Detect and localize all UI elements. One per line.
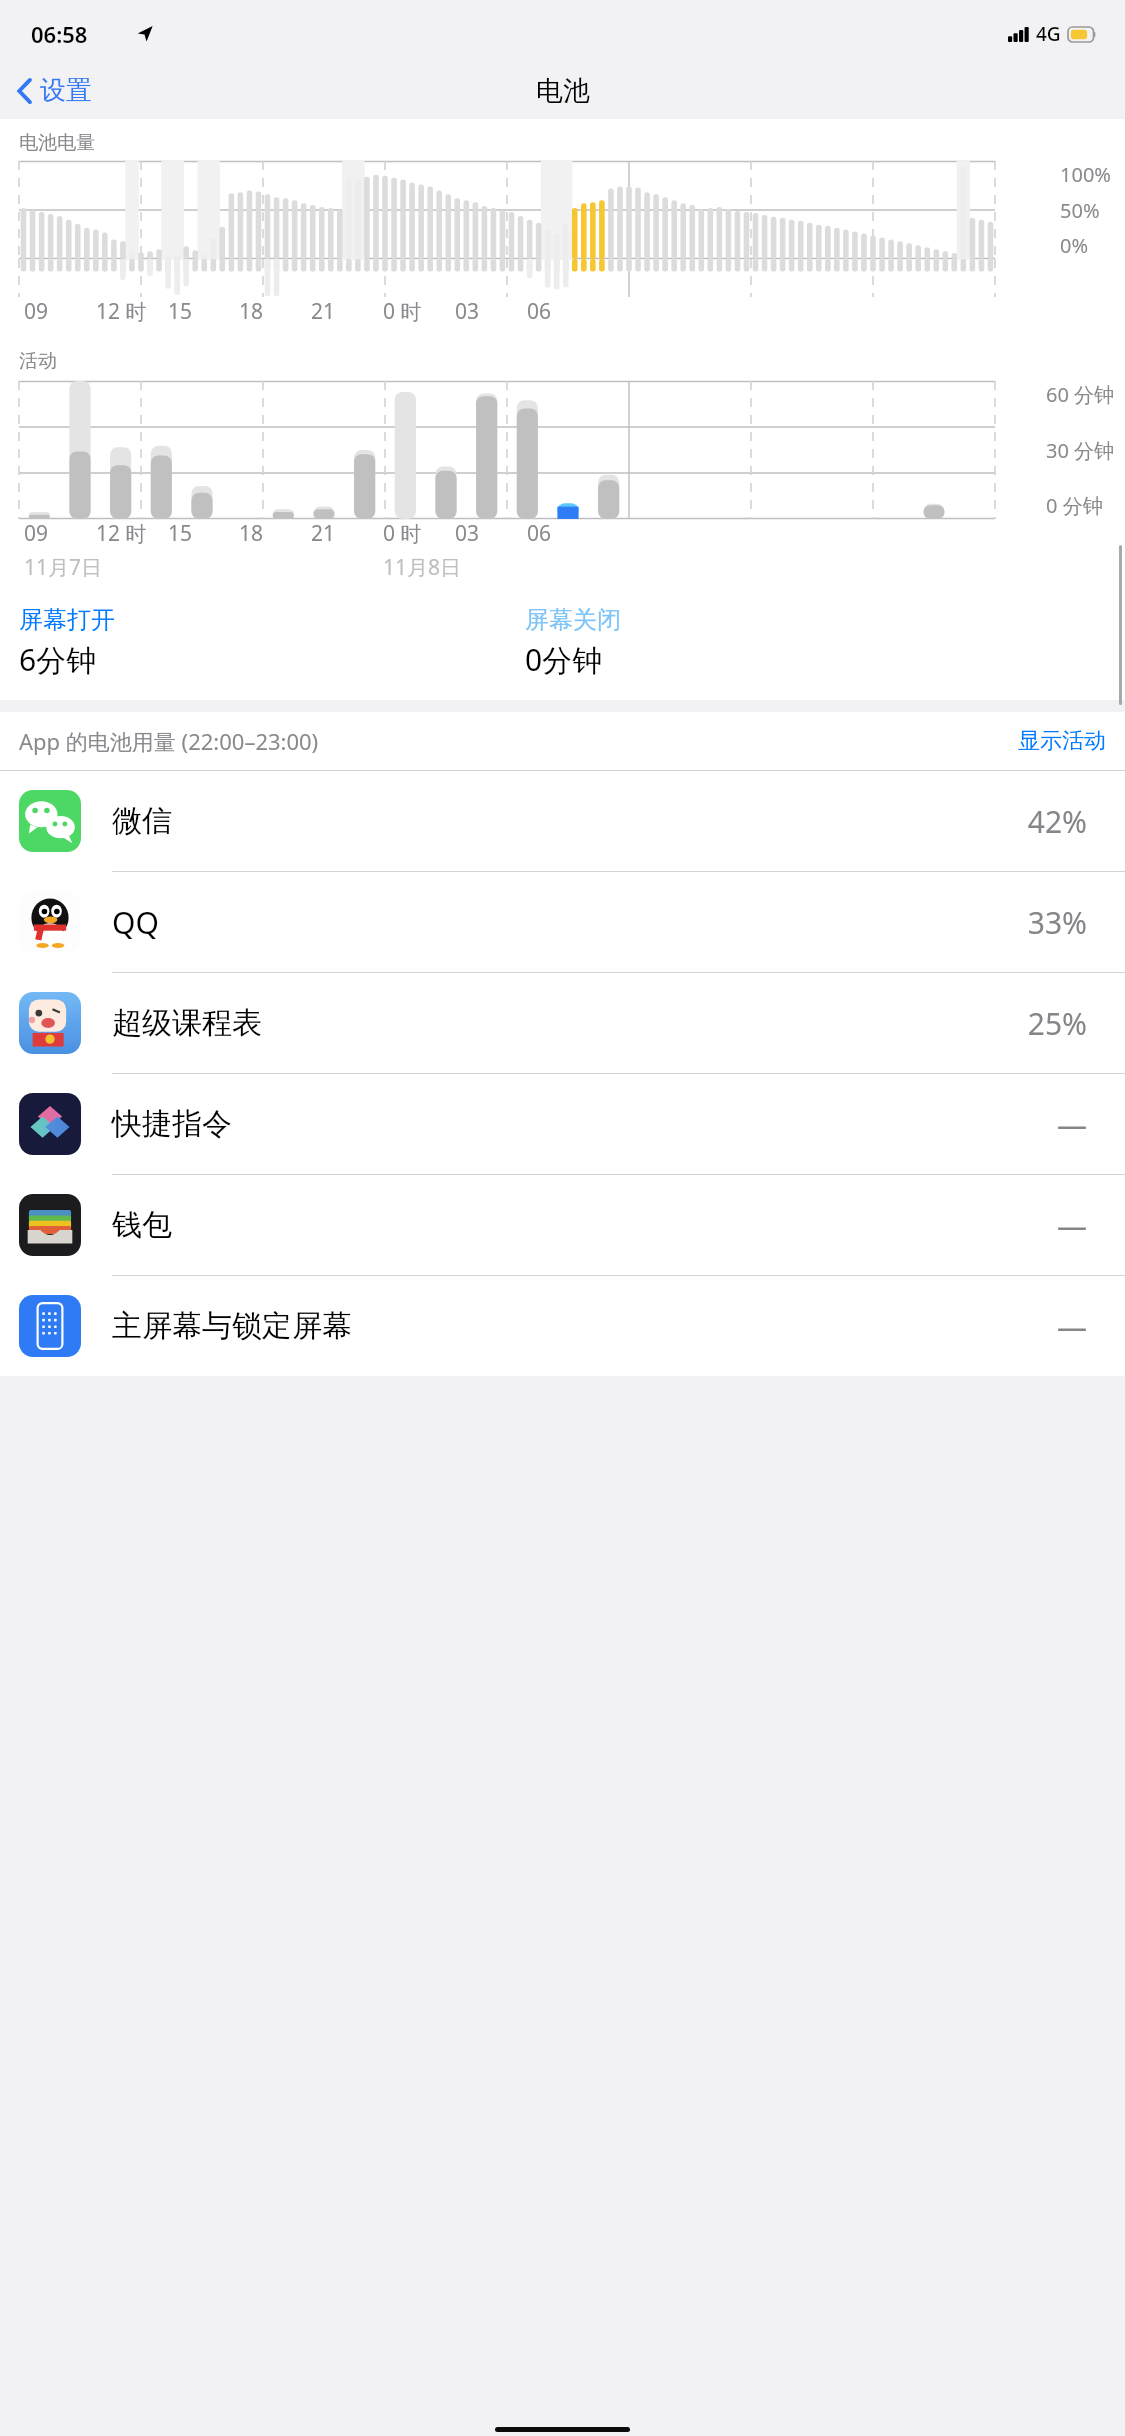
staticText: 12 时 [96, 297, 147, 326]
staticText: 15 [168, 519, 193, 548]
staticText: 06 [527, 519, 552, 548]
button[interactable]: 微信 [0, 771, 1125, 871]
staticText: 18 [239, 519, 264, 548]
staticText: 33% [1027, 902, 1087, 943]
staticText: 42% [1027, 801, 1087, 842]
staticText: 主屏幕与锁定屏幕 [112, 1307, 1057, 1345]
staticText: 屏幕打开 [19, 605, 115, 635]
staticText: — [1057, 1205, 1087, 1246]
staticText: 30 分钟 [1046, 437, 1115, 464]
staticText: 15 [168, 297, 193, 326]
staticText: 0% [1060, 232, 1089, 259]
staticText: 6分钟 [19, 639, 97, 680]
staticText: 100% [1060, 161, 1111, 188]
staticText: 60 分钟 [1046, 381, 1115, 408]
staticText: 设置 [40, 74, 92, 107]
button[interactable]: 超级课程表 [0, 973, 1125, 1073]
button[interactable]: QQ [0, 872, 1125, 972]
staticText: 03 [455, 519, 480, 548]
staticText: QQ [112, 902, 1027, 943]
staticText: 0分钟 [525, 639, 603, 680]
staticText: 0 时 [383, 297, 422, 326]
button[interactable]: 主屏幕与锁定屏幕 [0, 1276, 1125, 1376]
staticText: 超级课程表 [112, 1004, 1027, 1042]
staticText: 快捷指令 [112, 1105, 1057, 1143]
staticText: 21 [311, 519, 336, 548]
staticText: 活动 [19, 349, 57, 373]
staticText: 0 分钟 [1046, 492, 1103, 519]
staticText: 03 [455, 297, 480, 326]
staticText: 09 [24, 519, 49, 548]
staticText: 12 时 [96, 519, 147, 548]
staticText: 50% [1060, 197, 1100, 224]
staticText: 电池 [536, 74, 590, 108]
staticText: 钱包 [112, 1206, 1057, 1244]
staticText: 06:58 [31, 19, 88, 49]
button[interactable]: 钱包 [0, 1175, 1125, 1275]
staticText: 显示活动 [1018, 727, 1106, 755]
button[interactable]: 显示活动 [999, 719, 1125, 763]
staticText: 微信 [112, 802, 1027, 840]
staticText: 0 时 [383, 519, 422, 548]
staticText: 11月7日 [24, 553, 103, 582]
staticText: 25% [1027, 1003, 1087, 1044]
staticText: 屏幕关闭 [525, 605, 621, 635]
button[interactable]: 设置 [0, 70, 104, 111]
staticText: — [1057, 1104, 1087, 1145]
staticText: 11月8日 [383, 553, 462, 582]
staticText: 21 [311, 297, 336, 326]
staticText: 06 [527, 297, 552, 326]
staticText: — [1057, 1306, 1087, 1347]
staticText: 18 [239, 297, 264, 326]
staticText: 4G [1036, 21, 1061, 47]
button[interactable]: 快捷指令 [0, 1074, 1125, 1174]
staticText: 09 [24, 297, 49, 326]
staticText: 电池电量 [19, 131, 95, 155]
staticText: App 的电池用量 (22:00–23:00) [19, 726, 319, 756]
